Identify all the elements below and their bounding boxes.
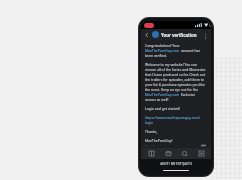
button[interactable]: Calendar [161,148,175,159]
staticText: your list & purchase episodes you like [145,82,205,87]
staticText: stream all of the Series and Miniseries [145,67,206,72]
button[interactable]: Reply [200,145,207,146]
button[interactable]: More options [202,31,209,38]
staticText: been verified. [145,53,167,58]
staticText: Thanks, [145,129,158,134]
staticText: Login and get started! [145,106,181,111]
staticText: the trailers for episodes, add them to [145,77,205,82]
staticText: 46HT} RH1RT}J46T3 [160,161,192,166]
staticText: MaxThePornGuy! [145,138,173,143]
staticText: Exclusive [180,92,196,97]
button[interactable]: Apps [194,148,208,159]
staticText: Welcome to my website! You can [145,62,197,67]
staticText: login [145,120,153,125]
staticText: that I have produced so far. Check out [145,72,206,77]
staticText: Your verification ha... [161,32,202,38]
staticText: scenes as well! [145,97,169,102]
staticText: https://www.maxthepornguy.com/ [145,115,200,120]
button[interactable]: https://www.maxthepornguy.com/ [145,115,200,125]
staticText: the most. Keep an eye out for the [145,87,199,92]
staticText: MaxThePornGuy.com [145,48,180,53]
staticText: MaxThePornGuy.com [145,92,180,97]
staticText: Congratulations! Your [145,43,180,48]
staticText: account has [180,48,201,53]
button[interactable]: Back [143,31,151,39]
button[interactable]: Feed [177,148,191,159]
button[interactable]: Mail [144,148,158,159]
staticText: Sent from [145,145,160,146]
